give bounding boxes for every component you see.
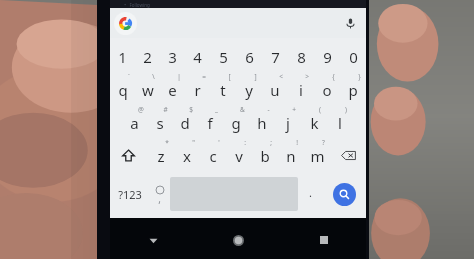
staticText: v — [235, 146, 243, 166]
button[interactable]: - — [249, 104, 275, 137]
button[interactable]: 2 — [135, 38, 160, 71]
staticText: e — [168, 80, 177, 100]
staticText: ?123 — [118, 187, 142, 202]
staticText: l — [338, 113, 342, 133]
button[interactable]: 6 — [236, 38, 262, 71]
staticText: b — [260, 146, 270, 166]
button[interactable]: Backspace — [330, 137, 366, 170]
staticText: w — [142, 80, 154, 100]
button[interactable]: @ — [122, 104, 147, 137]
staticText: c — [209, 146, 217, 166]
staticText: ; — [270, 138, 272, 147]
staticText: u — [270, 80, 280, 100]
staticText: 0 — [349, 47, 358, 67]
staticText: ! — [296, 138, 298, 147]
staticText: z — [157, 146, 165, 166]
staticText: \ — [152, 72, 155, 81]
staticText: } — [358, 72, 361, 81]
staticText: ' — [218, 138, 220, 147]
button[interactable]: ?123 — [110, 170, 149, 218]
staticText: y — [245, 80, 253, 100]
button[interactable]: 5 — [210, 38, 236, 71]
button[interactable]: { — [314, 71, 340, 104]
staticText: * — [165, 138, 169, 147]
staticText: | — [177, 72, 181, 81]
staticText: s — [156, 113, 164, 133]
staticText: @ — [138, 105, 144, 114]
staticText: = — [202, 72, 206, 81]
button[interactable]: 4 — [185, 38, 210, 71]
staticText: & — [240, 105, 245, 114]
staticText: 3 — [168, 47, 177, 67]
button[interactable]: _ — [197, 104, 223, 137]
button[interactable]: ' — [200, 137, 226, 170]
staticText: < — [279, 72, 283, 81]
button[interactable]: 0 — [340, 38, 366, 71]
button[interactable]: " — [174, 137, 200, 170]
button[interactable]: ( — [301, 104, 327, 137]
staticText: - — [267, 105, 270, 114]
button[interactable]: ; — [252, 137, 278, 170]
staticText: + — [292, 105, 296, 114]
staticText: > — [305, 72, 309, 81]
button[interactable]: ` — [110, 71, 135, 104]
staticText: k — [310, 113, 319, 133]
staticText: , — [158, 192, 161, 206]
staticText: i — [299, 80, 303, 100]
button[interactable]: [ — [210, 71, 236, 104]
staticText: o — [322, 80, 332, 100]
button[interactable]: 9 — [314, 38, 340, 71]
staticText: d — [180, 113, 190, 133]
button[interactable]: 3 — [160, 38, 185, 71]
button[interactable]: ! — [278, 137, 304, 170]
staticText: 9 — [323, 47, 332, 67]
button[interactable]: Search — [333, 183, 356, 206]
staticText: m — [310, 146, 325, 166]
staticText: { — [332, 72, 335, 81]
button[interactable]: = — [185, 71, 210, 104]
staticText: $ — [189, 105, 193, 114]
button[interactable]: \ — [135, 71, 160, 104]
button[interactable]: } — [340, 71, 366, 104]
staticText: 4 — [193, 47, 202, 67]
staticText: j — [286, 113, 290, 133]
staticText: _ — [215, 105, 218, 114]
button[interactable]: Home — [196, 231, 281, 249]
button[interactable]: # — [147, 104, 172, 137]
staticText: a — [130, 113, 139, 133]
button[interactable]: : — [226, 137, 252, 170]
button[interactable]: + — [275, 104, 301, 137]
button[interactable]: $ — [172, 104, 197, 137]
button[interactable]: . — [298, 170, 323, 218]
button[interactable]: > — [288, 71, 314, 104]
button[interactable]: Back — [110, 231, 196, 249]
staticText: " — [192, 138, 195, 147]
button[interactable]: 7 — [262, 38, 288, 71]
button[interactable]: & — [223, 104, 249, 137]
staticText: [ — [228, 72, 231, 81]
button[interactable]: 1 — [110, 38, 135, 71]
staticText: g — [231, 113, 241, 133]
staticText: 2 — [143, 47, 152, 67]
button[interactable]: Google — [114, 12, 137, 35]
staticText: 8 — [297, 47, 306, 67]
button[interactable]: Emoji and comma — [149, 170, 170, 218]
staticText: 5 — [219, 47, 228, 67]
button[interactable]: ) — [327, 104, 353, 137]
button[interactable]: ] — [236, 71, 262, 104]
staticText: 6 — [245, 47, 254, 67]
button[interactable]: ? — [304, 137, 330, 170]
staticText: x — [183, 146, 191, 166]
button[interactable]: Recent apps — [281, 231, 366, 249]
staticText: 7 — [271, 47, 280, 67]
button[interactable]: Voice search — [341, 14, 359, 32]
staticText: ` — [128, 72, 130, 81]
button[interactable]: < — [262, 71, 288, 104]
button[interactable]: * — [147, 137, 174, 170]
button[interactable]: Shift — [110, 137, 147, 170]
button[interactable]: | — [160, 71, 185, 104]
button[interactable]: 8 — [288, 38, 314, 71]
staticText: ] — [254, 72, 257, 81]
staticText: 1 — [118, 47, 127, 67]
